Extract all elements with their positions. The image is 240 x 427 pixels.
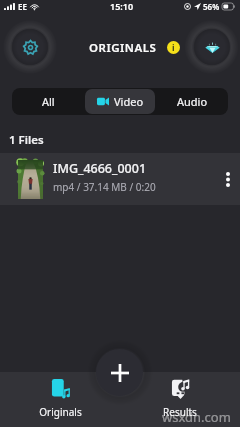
staticText: Originals [39,405,82,419]
button[interactable]: Video [85,89,155,114]
button[interactable]: Info [167,41,180,54]
staticText: Video [114,94,144,109]
staticText: Audio [177,94,208,109]
staticText: All [42,94,55,109]
staticText: ORIGINALS [89,40,157,56]
staticText: 56% [203,1,220,12]
button[interactable]: More options [217,159,239,199]
button[interactable]: Results [150,377,210,419]
staticText: i [172,42,175,54]
button[interactable]: All [13,89,83,114]
staticText: Results [163,405,197,419]
staticText: 1 Files [9,132,44,148]
button[interactable]: IMG_4666_0001 [0,153,240,205]
staticText: IMG_4666_0001 [53,160,147,177]
button[interactable]: Originals [30,377,90,419]
staticText: wsxdn.com [162,408,231,426]
button[interactable]: Premium [194,29,230,65]
button[interactable]: Settings [12,29,48,65]
staticText: mp4 / 37.14 MB / 0:20 [53,180,156,194]
staticText: 15:10 [110,0,134,12]
button[interactable]: Audio [157,89,227,114]
button[interactable]: Add [96,349,143,396]
staticText: EE [18,1,27,12]
